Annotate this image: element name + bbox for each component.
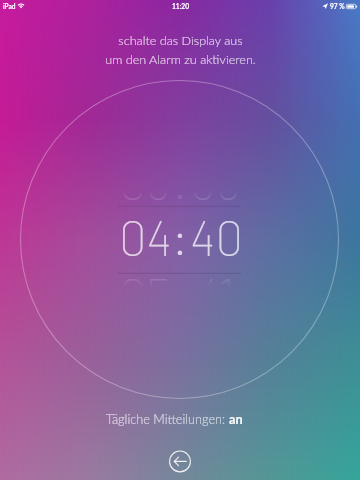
staticText: Tägliche Mitteilungen: (106, 411, 229, 426)
staticText: 41 (197, 265, 236, 324)
staticText: 97 % (330, 2, 345, 10)
staticText: 03 (119, 151, 172, 210)
staticText: um den Alarm zu aktivieren. (105, 52, 256, 67)
staticText: : (172, 207, 188, 266)
staticText: : (172, 265, 188, 324)
staticText: 11:20 (172, 2, 189, 10)
staticText: 39 (191, 151, 241, 210)
staticText: 04 (119, 207, 172, 266)
staticText: 05 (119, 265, 172, 324)
button[interactable]: Zurück (159, 440, 201, 480)
staticText: iPad (3, 2, 16, 10)
staticText: 40 (190, 207, 243, 266)
staticText: schalte das Display aus (118, 33, 243, 48)
staticText: : (172, 151, 188, 210)
staticText: an (229, 411, 243, 426)
